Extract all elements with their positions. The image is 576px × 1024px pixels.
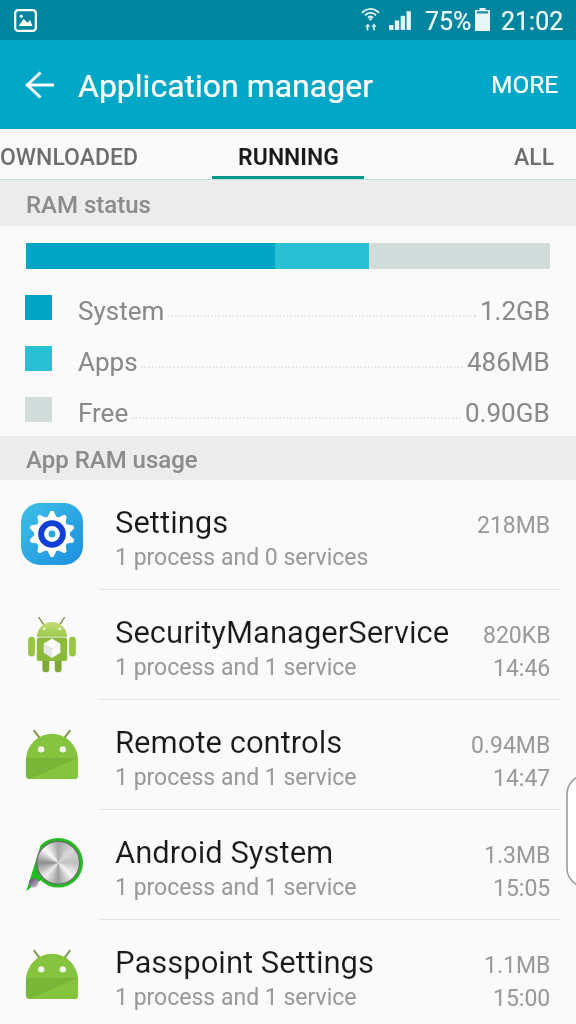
staticText: App RAM usage xyxy=(26,446,198,474)
button[interactable]: System xyxy=(0,282,576,333)
staticText: RAM status xyxy=(26,191,151,219)
button[interactable]: Apps xyxy=(0,333,576,384)
staticText: 1 process and 1 service xyxy=(115,874,357,901)
staticText: Settings xyxy=(115,504,229,540)
staticText: RUNNING xyxy=(238,144,339,171)
staticText: 0.94MB xyxy=(471,732,551,759)
staticText: DOWNLOADED xyxy=(0,144,139,171)
staticText: 1.3MB xyxy=(484,842,551,869)
staticText: 14:47 xyxy=(493,765,551,792)
staticText: ALL xyxy=(514,144,555,171)
staticText: System xyxy=(78,296,165,326)
button[interactable]: Passpoint Settings xyxy=(0,920,576,1024)
button[interactable]: Back xyxy=(12,57,68,113)
staticText: 1.1MB xyxy=(484,952,551,979)
staticText: MORE xyxy=(491,70,559,99)
staticText: Passpoint Settings xyxy=(115,944,375,980)
staticText: 0.90GB xyxy=(465,398,550,428)
button[interactable]: Free xyxy=(0,384,576,435)
staticText: 1.2GB xyxy=(480,296,550,326)
button[interactable]: SecurityManagerService xyxy=(0,590,576,700)
staticText: 15:05 xyxy=(493,875,551,902)
staticText: 15:00 xyxy=(493,985,551,1012)
button[interactable]: Android System xyxy=(0,810,576,920)
staticText: Android System xyxy=(115,834,334,870)
staticText: 1 process and 1 service xyxy=(115,984,357,1011)
staticText: 14:46 xyxy=(493,655,551,682)
staticText: 820KB xyxy=(483,622,551,649)
button[interactable]: Settings xyxy=(0,480,576,590)
staticText: Free xyxy=(78,398,129,428)
staticText: 1 process and 1 service xyxy=(115,764,357,791)
button[interactable]: Remote controls xyxy=(0,700,576,810)
staticText: 218MB xyxy=(477,512,551,539)
staticText: Apps xyxy=(78,347,138,377)
staticText: 75% xyxy=(425,7,472,36)
staticText: 486MB xyxy=(467,347,550,377)
staticText: Remote controls xyxy=(115,724,343,760)
staticText: 1 process and 0 services xyxy=(115,544,369,571)
staticText: 1 process and 1 service xyxy=(115,654,357,681)
staticText: Application manager xyxy=(78,67,373,105)
staticText: 21:02 xyxy=(501,7,564,36)
staticText: SecurityManagerService xyxy=(115,614,450,650)
button[interactable]: MORE xyxy=(471,56,576,113)
